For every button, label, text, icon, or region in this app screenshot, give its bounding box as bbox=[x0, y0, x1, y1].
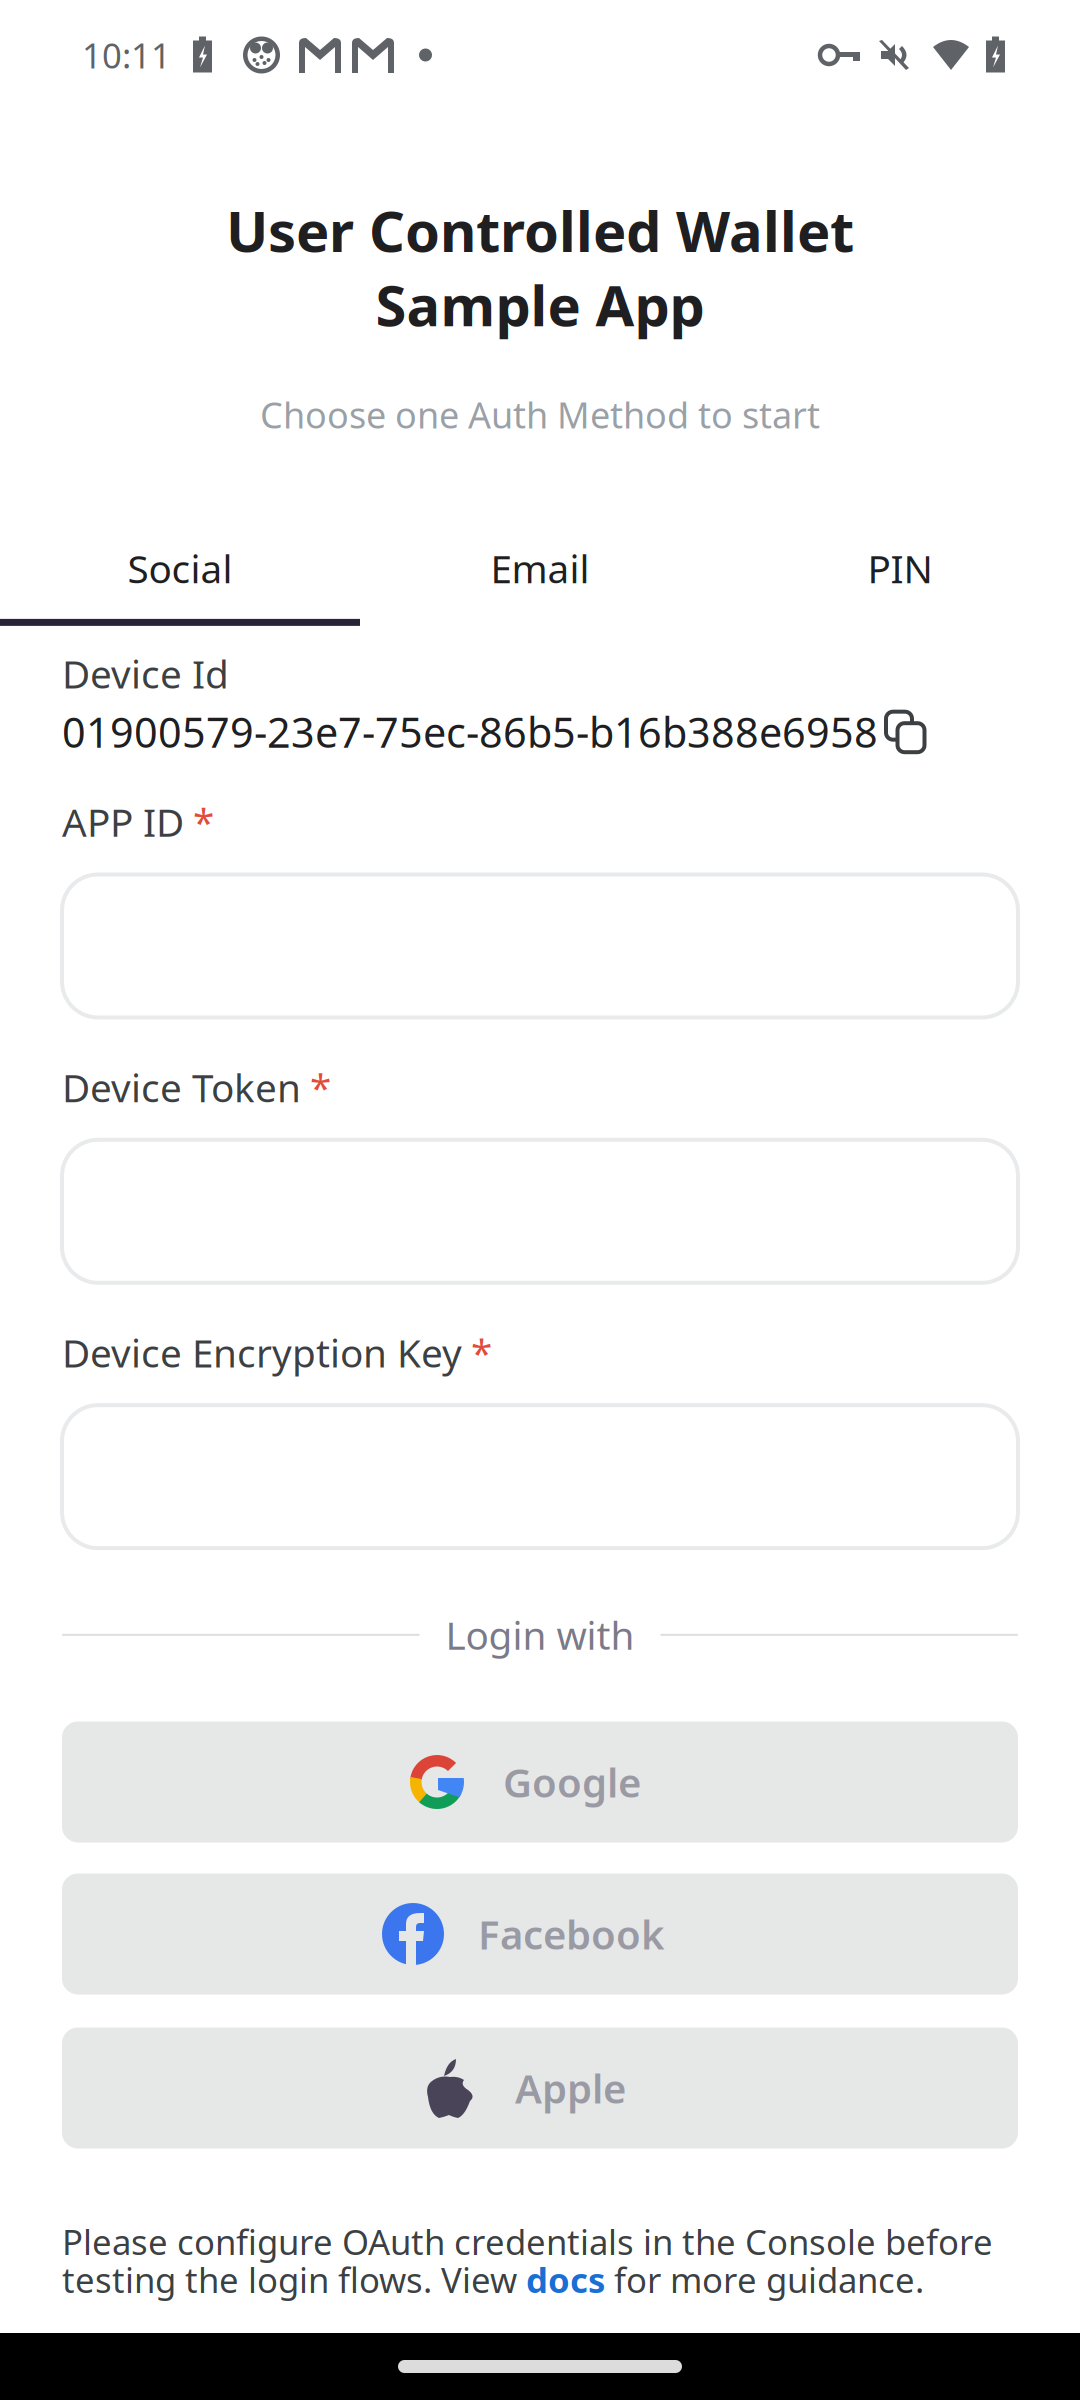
staticText: * bbox=[471, 1327, 492, 1378]
staticText: Device Token bbox=[62, 1061, 301, 1113]
staticText: Apple bbox=[515, 2061, 626, 2115]
staticText: PIN bbox=[867, 542, 932, 594]
staticText: Facebook bbox=[478, 1907, 665, 1961]
staticText: docs bbox=[526, 2256, 605, 2302]
button[interactable]: Social bbox=[0, 542, 360, 626]
button[interactable]: Facebook bbox=[62, 1873, 1018, 1994]
staticText: User Controlled Wallet bbox=[226, 193, 854, 267]
button[interactable]: Apple bbox=[62, 2027, 1018, 2148]
button[interactable]: Google bbox=[62, 1721, 1018, 1842]
staticText: * bbox=[193, 796, 214, 847]
staticText: Email bbox=[490, 542, 589, 594]
staticText: testing the login flows. View bbox=[62, 2256, 526, 2302]
button[interactable]: Copy device id bbox=[882, 709, 928, 755]
staticText: Social bbox=[127, 542, 232, 594]
staticText: Device Id bbox=[62, 648, 229, 699]
staticText: Google bbox=[503, 1755, 641, 1809]
staticText: * bbox=[310, 1061, 331, 1113]
staticText: for more guidance. bbox=[605, 2256, 924, 2302]
staticText: Please configure OAuth credentials in th… bbox=[62, 2218, 993, 2264]
button[interactable]: PIN bbox=[720, 542, 1080, 626]
staticText: 01900579-23e7-75ec-86b5-b16b388e6958 bbox=[62, 704, 878, 759]
button[interactable]: docs bbox=[526, 2256, 605, 2302]
staticText: Choose one Auth Method to start bbox=[260, 391, 820, 438]
staticText: Sample App bbox=[375, 267, 704, 342]
button[interactable]: Email bbox=[360, 542, 720, 626]
staticText: Device Encryption Key bbox=[62, 1327, 462, 1378]
staticText: Login with bbox=[445, 1609, 634, 1660]
staticText: 10:11 bbox=[82, 32, 171, 78]
staticText: APP ID bbox=[62, 796, 184, 847]
